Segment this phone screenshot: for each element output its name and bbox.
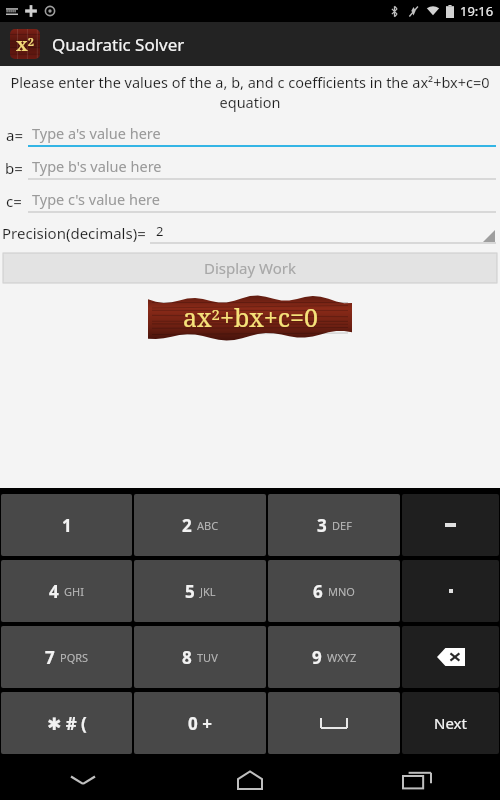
staticText: a= — [6, 125, 23, 145]
staticText: Please enter the values of the a, b, and… — [8, 72, 492, 112]
staticText: ABC — [197, 518, 219, 533]
staticText: ✱ # ( — [47, 712, 87, 735]
button[interactable]: Type c's value here — [28, 184, 496, 217]
button[interactable]: Recent apps — [333, 760, 500, 800]
button[interactable]: 1 — [1, 494, 132, 556]
staticText: Type c's value here — [32, 189, 160, 209]
staticText: b= — [5, 158, 23, 178]
staticText: 1 — [62, 514, 72, 537]
staticText: MNO — [328, 584, 355, 599]
button[interactable]: 2 — [134, 494, 266, 556]
staticText: 7 — [45, 646, 55, 669]
staticText: 2 — [182, 514, 192, 537]
button[interactable]: 8 — [134, 626, 266, 688]
button[interactable]: Decimal point — [402, 560, 499, 622]
button[interactable]: Hide keyboard — [0, 760, 166, 800]
button[interactable]: Backspace — [402, 626, 499, 688]
staticText: GHI — [64, 584, 84, 599]
button[interactable]: Space — [268, 692, 400, 754]
button[interactable]: Minus — [402, 494, 499, 556]
button[interactable]: Next — [402, 692, 499, 754]
staticText: Type b's value here — [32, 156, 162, 176]
staticText: 9 — [312, 646, 322, 669]
staticText: x2 — [16, 32, 34, 57]
button[interactable]: 5 — [134, 560, 266, 622]
staticText: Display Work — [204, 258, 296, 278]
staticText: PQRS — [60, 650, 89, 665]
button[interactable]: Type a's value here — [28, 118, 496, 151]
staticText: JKL — [200, 584, 216, 599]
button[interactable]: Home — [166, 760, 333, 800]
staticText: c= — [6, 191, 22, 211]
staticText: Precision(decimals)= — [2, 223, 146, 243]
staticText: TUV — [197, 650, 218, 665]
staticText: 0 + — [188, 712, 212, 735]
staticText: 6 — [313, 580, 323, 603]
button[interactable]: 7 — [1, 626, 132, 688]
staticText: 19:16 — [460, 2, 494, 20]
staticText: 4 — [49, 580, 59, 603]
staticText: Next — [434, 713, 467, 733]
button[interactable]: 2 — [150, 217, 496, 249]
button[interactable]: 0 + — [134, 692, 266, 754]
button[interactable]: 4 — [1, 560, 132, 622]
staticText: DEF — [332, 518, 352, 533]
staticText: 5 — [185, 580, 195, 603]
button[interactable]: 6 — [268, 560, 400, 622]
staticText: 2 — [156, 222, 164, 240]
staticText: Quadratic Solver — [52, 33, 185, 56]
button[interactable]: Type b's value here — [28, 151, 496, 184]
button[interactable]: 3 — [268, 494, 400, 556]
staticText: ax2+bx+c=0 — [183, 300, 318, 334]
button[interactable]: 9 — [268, 626, 400, 688]
staticText: 8 — [182, 646, 192, 669]
staticText: WXYZ — [327, 650, 357, 665]
button[interactable]: Display Work — [3, 253, 497, 283]
button[interactable]: ✱ # ( — [1, 692, 132, 754]
staticText: 3 — [317, 514, 327, 537]
staticText: Type a's value here — [32, 123, 161, 143]
